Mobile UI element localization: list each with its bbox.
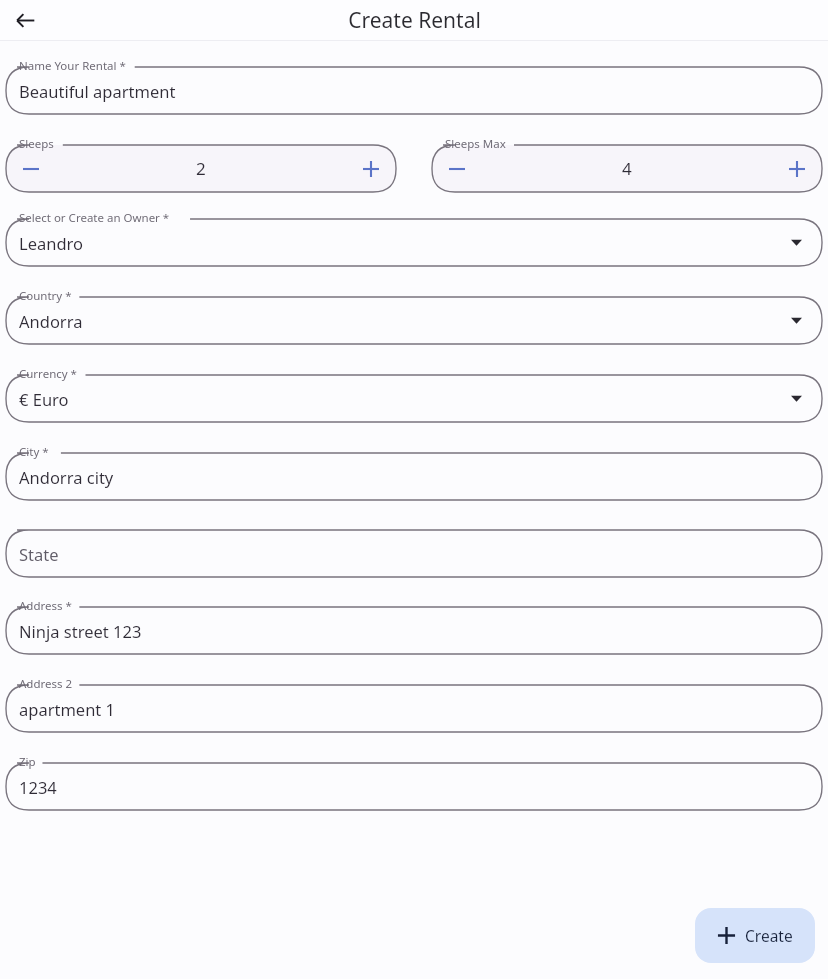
staticText: Select or Create an Owner *: [19, 210, 170, 226]
staticText: Create: [745, 925, 793, 946]
button[interactable]: Decrease Sleeps: [12, 150, 50, 188]
button[interactable]: State: [6, 520, 822, 577]
staticText: Leandro: [19, 232, 84, 254]
staticText: Address 2: [19, 676, 73, 692]
staticText: Create Rental: [348, 6, 481, 35]
button[interactable]: Select or Create an Owner *: [6, 209, 822, 266]
staticText: Currency *: [19, 366, 77, 382]
button[interactable]: City *: [6, 443, 822, 500]
staticText: Sleeps Max: [445, 136, 506, 152]
staticText: Andorra city: [19, 466, 114, 488]
button[interactable]: Currency *: [6, 365, 822, 422]
staticText: Name Your Rental *: [19, 58, 126, 74]
staticText: Zip: [19, 754, 36, 770]
staticText: Beautiful apartment: [19, 80, 176, 102]
staticText: apartment 1: [19, 698, 116, 720]
button[interactable]: Increase Sleeps Max: [778, 150, 816, 188]
button[interactable]: Create: [695, 908, 815, 963]
button[interactable]: Country *: [6, 287, 822, 344]
staticText: City *: [19, 444, 49, 460]
button[interactable]: Decrease Sleeps Max: [438, 150, 476, 188]
staticText: 1234: [19, 776, 57, 798]
staticText: Ninja street 123: [19, 620, 142, 642]
staticText: State: [19, 543, 59, 565]
staticText: € Euro: [19, 388, 69, 410]
staticText: Address *: [19, 598, 72, 614]
staticText: 4: [622, 157, 632, 180]
button[interactable]: Back: [6, 1, 44, 39]
button[interactable]: Zip: [6, 753, 822, 810]
staticText: Sleeps: [19, 136, 54, 152]
staticText: Andorra: [19, 310, 83, 332]
staticText: 2: [196, 157, 206, 180]
button[interactable]: Address 2: [6, 675, 822, 732]
staticText: Country *: [19, 288, 72, 304]
button[interactable]: Address *: [6, 597, 822, 654]
button[interactable]: Name Your Rental *: [6, 57, 822, 114]
button[interactable]: Increase Sleeps: [352, 150, 390, 188]
